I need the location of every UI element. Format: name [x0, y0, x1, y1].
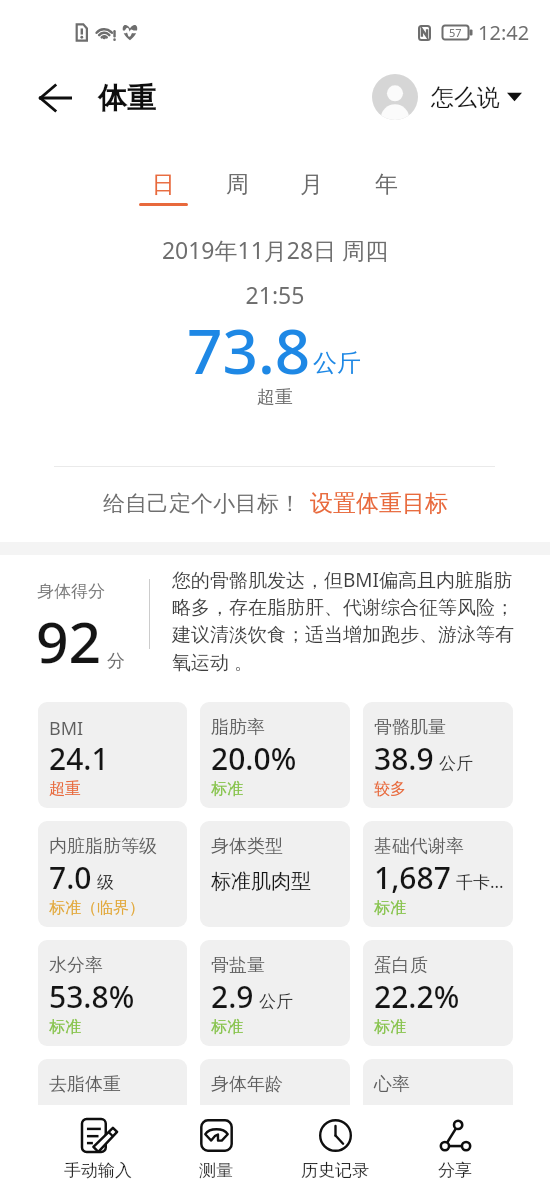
button[interactable]: 脂肪率 [200, 702, 350, 808]
staticText: 超重 [49, 779, 81, 799]
button[interactable]: 设置体重目标 [310, 489, 448, 518]
staticText: 测量 [199, 1160, 233, 1181]
staticText: 标准 [49, 1017, 81, 1037]
button[interactable]: BMI [38, 702, 187, 808]
button[interactable]: 身体年龄 [200, 1059, 350, 1165]
staticText: 级 [97, 872, 114, 893]
staticText: 脂肪率 [211, 716, 265, 739]
button[interactable]: 去脂体重 [38, 1059, 187, 1165]
staticText: 22.2% [374, 976, 460, 1017]
button[interactable]: 年 [354, 160, 418, 212]
staticText: 蛋白质 [374, 954, 428, 977]
button[interactable]: 心率 [363, 1059, 513, 1165]
staticText: 体重 [98, 80, 156, 117]
button[interactable]: 骨骼肌量 [363, 702, 513, 808]
staticText: 身体年龄 [211, 1073, 283, 1096]
staticText: 24.1 [49, 738, 109, 779]
button[interactable]: Manual input [43, 1111, 153, 1187]
staticText: 57 [449, 25, 462, 40]
button[interactable]: 基础代谢率 [363, 821, 513, 927]
staticText: 12:42 [478, 19, 530, 46]
staticText: 手动输入 [64, 1160, 132, 1181]
staticText: 标准肌肉型 [211, 869, 311, 894]
staticText: 心率 [374, 1073, 410, 1096]
button[interactable]: 蛋白质 [363, 940, 513, 1046]
button[interactable]: 内脏脂肪等级 [38, 821, 187, 927]
staticText: BMI [49, 716, 84, 741]
staticText: 基础代谢率 [374, 835, 464, 858]
staticText: 21:55 [0, 279, 550, 310]
staticText: 公斤 [259, 991, 293, 1012]
staticText: 内脏脂肪等级 [49, 835, 157, 858]
staticText: 怎么说 [431, 83, 500, 112]
staticText: 7.0 [49, 857, 92, 898]
staticText: 公斤 [439, 753, 473, 774]
staticText: 53.8% [49, 976, 135, 1017]
staticText: 日 [152, 170, 175, 199]
button[interactable]: Measure [161, 1111, 271, 1187]
button[interactable]: 身体类型 [200, 821, 350, 927]
staticText: 千卡... [456, 870, 504, 893]
button[interactable]: Share [400, 1111, 510, 1187]
button[interactable]: 怎么说 [372, 74, 522, 120]
button[interactable]: Back [29, 72, 81, 124]
staticText: 给自己定个小目标！ [103, 490, 301, 518]
staticText: 设置体重目标 [310, 489, 448, 518]
staticText: 标准 [374, 898, 406, 918]
staticText: 标准（临界） [49, 898, 145, 918]
staticText: 公斤 [313, 348, 361, 378]
staticText: 2.9 [211, 976, 254, 1017]
staticText: 周 [226, 170, 249, 199]
staticText: 身体类型 [211, 835, 283, 858]
staticText: 1,687 [374, 857, 451, 898]
button[interactable]: History [280, 1111, 390, 1187]
staticText: 骨盐量 [211, 954, 265, 977]
staticText: 20.0% [211, 738, 297, 779]
staticText: 水分率 [49, 954, 103, 977]
staticText: 73.8 [187, 308, 311, 392]
button[interactable]: 月 [279, 160, 343, 212]
staticText: 历史记录 [301, 1160, 369, 1181]
staticText: 骨骼肌量 [374, 716, 446, 739]
staticText: 标准 [211, 779, 243, 799]
staticText: 92 [36, 602, 102, 680]
staticText: 较多 [374, 779, 406, 799]
button[interactable]: 水分率 [38, 940, 187, 1046]
staticText: 标准 [211, 1017, 243, 1037]
staticText: 分 [107, 650, 125, 673]
button[interactable]: 周 [205, 160, 269, 212]
staticText: 年 [375, 170, 398, 199]
staticText: 去脂体重 [49, 1073, 121, 1096]
button[interactable]: 日 [131, 160, 195, 212]
button[interactable]: 骨盐量 [200, 940, 350, 1046]
staticText: 2019年11月28日 周四 [0, 234, 550, 265]
staticText: 超重 [0, 386, 550, 409]
staticText: 38.9 [374, 738, 434, 779]
staticText: 您的骨骼肌发达，但BMI偏高且内脏脂肪略多，存在脂肪肝、代谢综合征等风险；建议清… [172, 567, 517, 675]
staticText: 月 [300, 170, 323, 199]
staticText: 标准 [374, 1017, 406, 1037]
staticText: 身体得分 [37, 581, 105, 602]
staticText: 分享 [438, 1160, 472, 1181]
